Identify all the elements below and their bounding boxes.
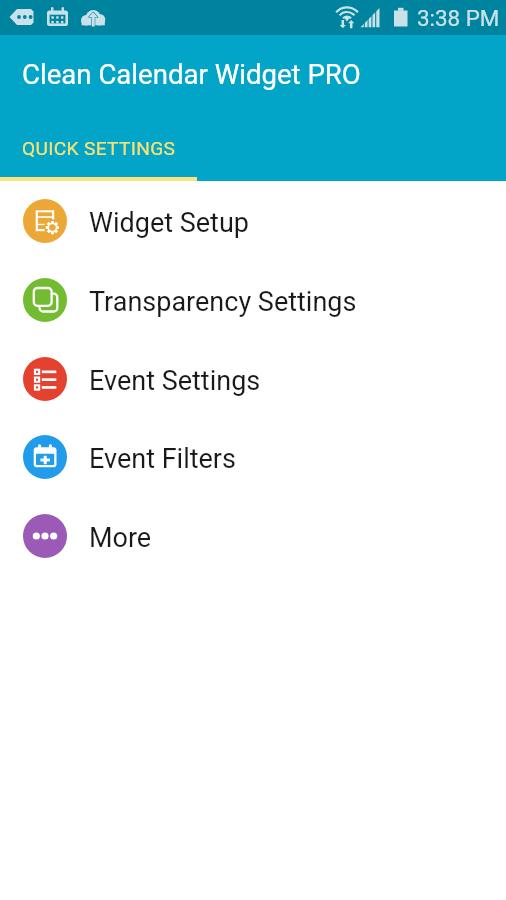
staticText: Transparency Settings xyxy=(89,286,357,318)
button[interactable]: Transparency Settings xyxy=(0,260,506,339)
button[interactable]: Event Settings xyxy=(0,339,506,418)
button[interactable]: QUICK SETTINGS xyxy=(0,116,197,181)
staticText: Event Filters xyxy=(89,443,236,475)
staticText: 3:38 PM xyxy=(417,5,500,31)
staticText: More xyxy=(89,522,152,554)
staticText: QUICK SETTINGS xyxy=(22,137,176,160)
staticText: Clean Calendar Widget PRO xyxy=(22,58,361,90)
button[interactable]: More xyxy=(0,496,506,575)
staticText: Event Settings xyxy=(89,365,261,397)
button[interactable]: Event Filters xyxy=(0,417,506,496)
staticText: Widget Setup xyxy=(89,207,249,239)
button[interactable]: Widget Setup xyxy=(0,181,506,260)
